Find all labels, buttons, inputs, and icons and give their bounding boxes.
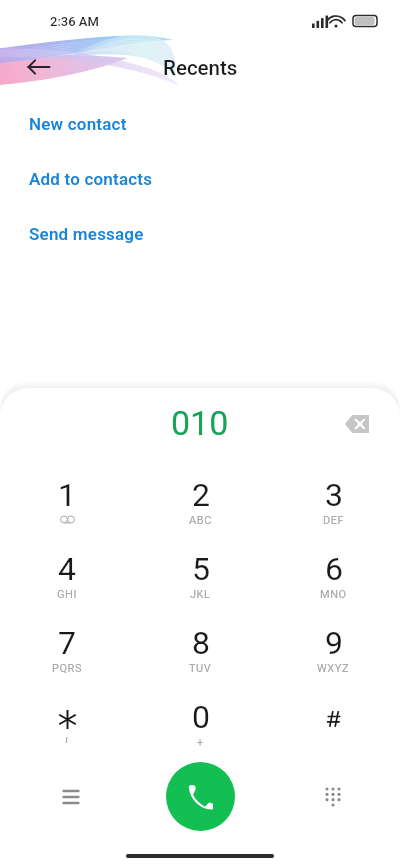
- button[interactable]: 3: [267, 470, 400, 544]
- staticText: Add to contacts: [29, 169, 153, 189]
- staticText: DEF: [323, 514, 345, 527]
- button[interactable]: 8: [134, 618, 267, 692]
- button[interactable]: 6: [267, 544, 400, 618]
- button[interactable]: [267, 692, 400, 766]
- button[interactable]: Call: [166, 762, 235, 831]
- button[interactable]: Dialpad: [311, 775, 355, 819]
- staticText: 2:36 AM: [50, 14, 99, 29]
- staticText: 9: [325, 624, 343, 662]
- staticText: PQRS: [52, 662, 83, 675]
- staticText: +: [197, 736, 204, 749]
- button[interactable]: Back: [18, 46, 60, 88]
- button[interactable]: Add to contacts: [0, 151, 400, 206]
- button[interactable]: 4: [0, 544, 134, 618]
- button[interactable]: 0: [134, 692, 267, 766]
- button[interactable]: 7: [0, 618, 134, 692]
- staticText: 2: [192, 476, 210, 514]
- staticText: 1: [58, 476, 76, 514]
- staticText: MNO: [320, 588, 347, 601]
- staticText: 6: [325, 550, 343, 588]
- button[interactable]: 1: [0, 470, 134, 544]
- button[interactable]: New contact: [0, 96, 400, 151]
- button[interactable]: Send message: [0, 206, 400, 261]
- staticText: 8: [192, 624, 210, 662]
- staticText: New contact: [29, 114, 127, 134]
- staticText: Send message: [29, 224, 144, 244]
- button[interactable]: 9: [267, 618, 400, 692]
- staticText: 4: [58, 550, 76, 588]
- staticText: TUV: [189, 662, 212, 675]
- staticText: 7: [58, 624, 76, 662]
- button[interactable]: 5: [134, 544, 267, 618]
- staticText: 5: [192, 550, 210, 588]
- button[interactable]: 2: [134, 470, 267, 544]
- staticText: Recents: [163, 56, 238, 80]
- staticText: 0: [192, 698, 210, 736]
- staticText: 010: [171, 403, 229, 443]
- button[interactable]: Call log: [49, 775, 93, 819]
- staticText: GHI: [57, 588, 77, 601]
- button[interactable]: [0, 692, 134, 766]
- staticText: WXYZ: [317, 662, 350, 675]
- staticText: JKL: [190, 588, 211, 601]
- staticText: 3: [325, 476, 343, 514]
- staticText: ABC: [189, 514, 212, 527]
- button[interactable]: Backspace: [340, 407, 374, 441]
